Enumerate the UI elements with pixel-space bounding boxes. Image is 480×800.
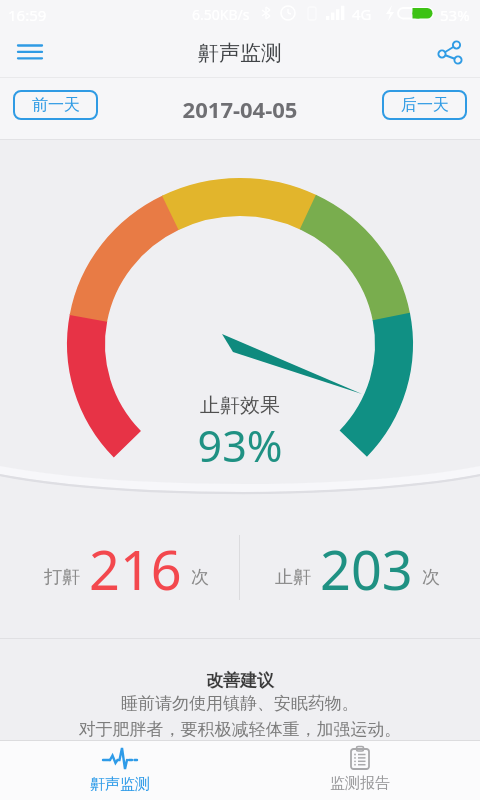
staticText: 216 bbox=[89, 532, 182, 592]
staticText: 2017-04-05 bbox=[0, 94, 480, 124]
staticText: 后一天 bbox=[401, 95, 449, 115]
staticText: 6.50KB/s bbox=[192, 5, 250, 24]
staticText: 监测报告 bbox=[330, 774, 390, 793]
button[interactable]: 前一天 bbox=[13, 90, 98, 120]
button[interactable] bbox=[6, 32, 54, 72]
staticText: 改善建议 bbox=[0, 670, 480, 691]
button[interactable]: 后一天 bbox=[382, 90, 467, 120]
staticText: 4G bbox=[352, 4, 372, 24]
staticText: 睡前请勿使用镇静、安眠药物。 bbox=[0, 693, 480, 714]
staticText: 203 bbox=[320, 532, 413, 592]
staticText: 16:59 bbox=[8, 5, 47, 25]
button[interactable] bbox=[428, 32, 472, 72]
staticText: 鼾声监测 bbox=[90, 775, 150, 794]
staticText: 前一天 bbox=[32, 95, 80, 115]
staticText: 次 bbox=[422, 566, 440, 589]
staticText: 次 bbox=[191, 566, 209, 589]
staticText: 93% bbox=[0, 416, 480, 475]
staticText: 鼾声监测 bbox=[0, 40, 480, 66]
staticText: 止鼾 bbox=[275, 566, 311, 589]
staticText: 打鼾 bbox=[44, 566, 80, 589]
staticText: 止鼾效果 bbox=[0, 393, 480, 418]
staticText: 对于肥胖者，要积极减轻体重，加强运动。 bbox=[0, 719, 480, 740]
button[interactable]: 鼾声监测 bbox=[0, 740, 240, 800]
button[interactable]: 监测报告 bbox=[240, 740, 480, 800]
staticText: 53% bbox=[440, 5, 470, 25]
